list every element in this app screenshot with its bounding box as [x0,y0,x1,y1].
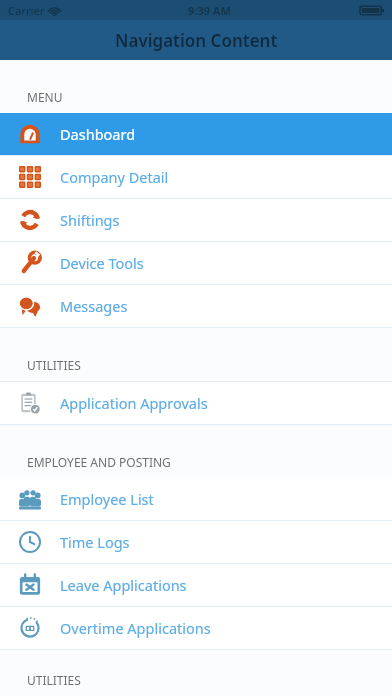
staticText: Device Tools [60,253,144,273]
button[interactable]: Messages [0,285,392,327]
staticText: Navigation Content [115,29,278,52]
button[interactable]: Leave Applications [0,564,392,606]
staticText: 9:39 AM [188,3,231,18]
staticText: Messages [60,296,128,316]
staticText: EMPLOYEE AND POSTING [27,454,171,470]
other: Time Logs [19,531,41,553]
staticText: Shiftings [60,210,120,230]
staticText: Leave Applications [60,575,187,595]
other: Shiftings [19,209,41,231]
staticText: Application Approvals [60,393,208,413]
other: Overtime Applications [19,617,41,639]
button[interactable]: Device Tools [0,242,392,284]
button[interactable]: Employee List [0,478,392,520]
button[interactable]: Dashboard [0,113,392,155]
button[interactable]: Application Approvals [0,382,392,424]
button[interactable]: Shiftings [0,199,392,241]
other: Leave Applications [19,574,41,596]
staticText: UTILITIES [27,672,81,688]
staticText: Employee List [60,489,154,509]
button[interactable]: Overtime Applications [0,607,392,649]
staticText: MENU [27,89,63,105]
other: Employee List [19,488,41,510]
staticText: Overtime Applications [60,618,211,638]
staticText: UTILITIES [27,357,81,373]
button[interactable]: Time Logs [0,521,392,563]
other: Dashboard [19,123,41,145]
button[interactable]: Company Detail [0,156,392,198]
staticText: Time Logs [60,532,130,552]
other: Application Approvals [19,392,41,414]
other: Company Detail [19,166,41,188]
staticText: Company Detail [60,167,169,187]
other: Device Tools [19,252,41,274]
staticText: Carrier [8,3,45,18]
other: Messages [19,295,41,317]
staticText: Dashboard [60,124,136,144]
